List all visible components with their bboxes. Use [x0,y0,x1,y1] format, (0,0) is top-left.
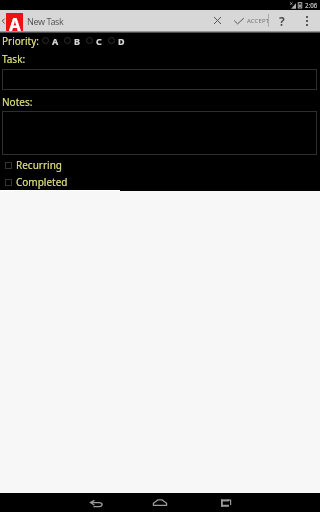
button[interactable]: A [42,34,64,47]
staticText: ? [279,13,285,29]
button[interactable]: B [64,34,86,47]
button[interactable] [2,69,317,90]
staticText: Completed [16,175,68,189]
button[interactable]: Navigate up [0,10,23,31]
staticText: Priority: [2,34,39,48]
staticText: B [74,35,80,47]
staticText: A [9,13,21,31]
staticText: Task: [2,52,26,66]
button[interactable]: Home [128,493,192,512]
button[interactable]: Recent apps [192,493,256,512]
staticText: ACCEPT [247,17,268,25]
staticText: A [52,35,59,47]
button[interactable]: ACCEPT [231,10,268,31]
staticText: 2:06 [305,1,318,9]
button[interactable] [2,111,317,155]
button[interactable]: Recurring [0,158,320,172]
button[interactable]: More options [294,10,320,31]
button[interactable]: Cancel [206,10,229,31]
staticText: Recurring [16,158,63,172]
staticText: D [118,35,125,47]
button[interactable]: Back [64,493,128,512]
staticText: New Task [27,15,64,27]
staticText: Notes: [2,95,33,109]
button[interactable]: Help [270,10,294,31]
staticText: C [96,35,102,47]
button[interactable]: C [86,34,108,47]
button[interactable]: D [108,34,130,47]
button[interactable]: Completed [0,175,320,189]
